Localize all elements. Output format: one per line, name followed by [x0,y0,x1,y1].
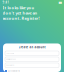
staticText: Your name [6,52,14,54]
staticText: don't yet have an [2,10,37,16]
staticText: Create an account [18,45,45,49]
staticText: Email address [6,58,16,60]
staticText: Password [6,64,14,66]
staticText: It looks like you [2,5,34,10]
staticText: ▮▮▮ [58,1,61,4]
staticText: 9:41 [2,1,9,4]
staticText: account. Register! [2,16,39,21]
staticText: I agree to the terms [8,70,20,72]
